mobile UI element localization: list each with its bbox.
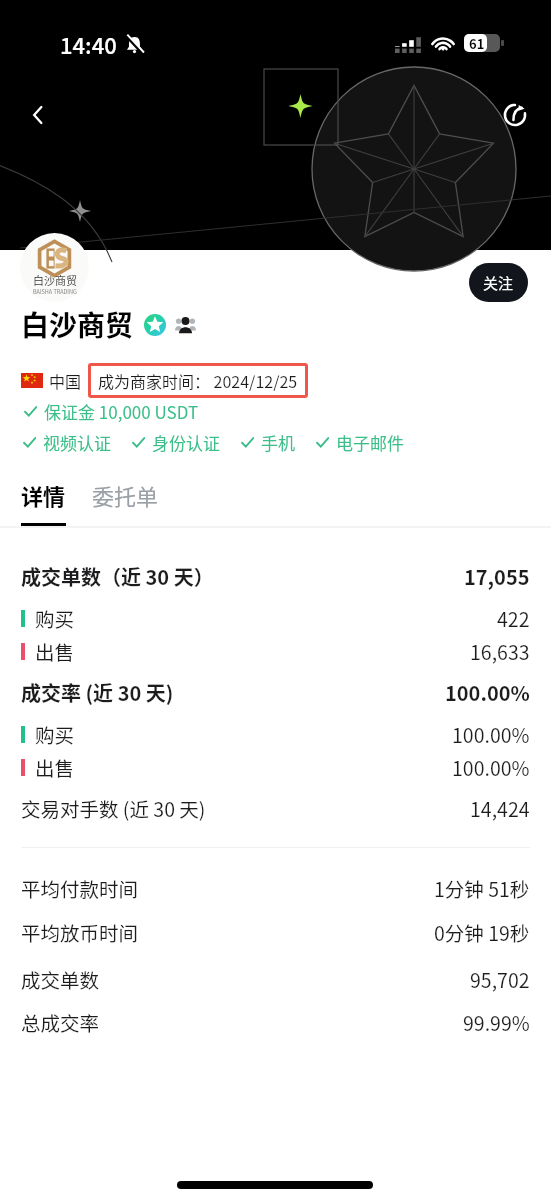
staticText: 0分钟 19秒 [434,918,530,946]
staticText: 委托单 [92,479,159,511]
staticText: 14:40 [60,28,117,60]
staticText: 99.99% [463,1008,530,1036]
staticText: 白沙商贸 [33,272,77,288]
staticText: 出售 [35,753,75,781]
staticText: 61 [469,34,485,53]
button[interactable]: 详情 [21,479,66,511]
staticText: 平均放币时间 [21,918,139,946]
button[interactable]: Back [17,94,59,136]
staticText: 16,633 [470,637,530,665]
staticText: 成交率 (近 30 天) [21,678,174,707]
staticText: 详情 [21,479,66,511]
staticText: 平均付款时间 [21,874,139,902]
staticText: 422 [497,604,530,632]
staticText: 手机 [261,430,295,455]
staticText: BAISHA TRADING [33,288,77,296]
staticText: 身份认证 [152,430,220,455]
staticText: 17,055 [464,562,530,591]
staticText: 100.00% [452,753,530,781]
staticText: 购买 [35,604,75,632]
staticText: 100.00% [452,720,530,748]
staticText: 电子邮件 [336,430,404,455]
staticText: 关注 [483,272,514,294]
staticText: 95,702 [470,965,530,993]
staticText: 购买 [35,720,75,748]
staticText: 总成交率 [21,1008,100,1036]
staticText: 1分钟 51秒 [434,874,530,902]
staticText: 成交单数 [21,965,100,993]
staticText: 视频认证 [43,430,111,455]
staticText: 100.00% [445,678,530,707]
staticText: 中国 [49,369,82,392]
button[interactable]: Refresh [494,94,536,136]
staticText: 出售 [35,637,75,665]
staticText: 成交单数（近 30 天） [21,562,214,591]
staticText: 白沙商贸 [21,304,134,345]
button[interactable]: 关注 [469,263,528,302]
button[interactable]: 委托单 [92,479,159,511]
staticText: 保证金 10,000 USDT [44,399,199,424]
staticText: 成为商家时间： 2024/12/25 [98,369,298,392]
staticText: 交易对手数 (近 30 天) [21,794,206,822]
staticText: 14,424 [470,794,530,822]
